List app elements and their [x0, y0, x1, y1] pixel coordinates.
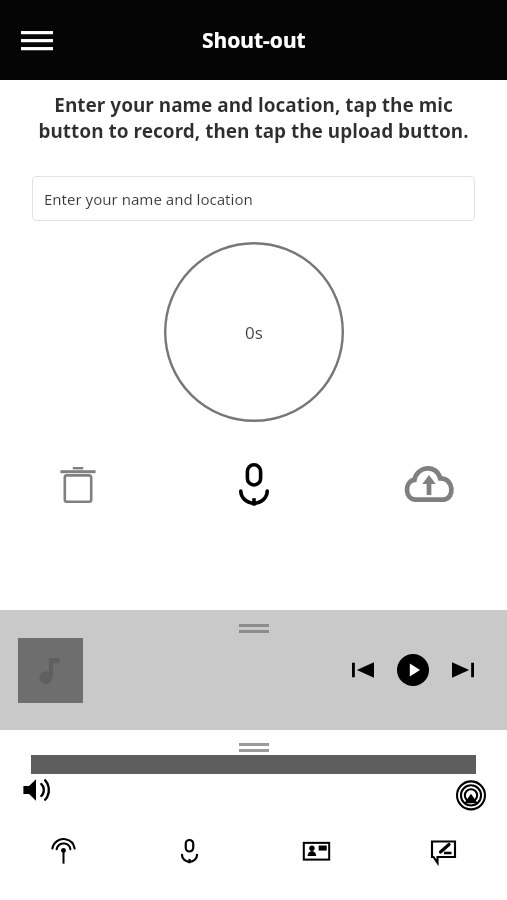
staticText: 0s — [245, 321, 263, 344]
button[interactable]: Record — [218, 449, 290, 521]
button[interactable]: Next track — [441, 648, 485, 692]
button[interactable]: Volume — [14, 768, 58, 812]
button[interactable]: Play — [391, 648, 435, 692]
button[interactable]: Upload — [393, 449, 465, 521]
button[interactable]: Contacts — [253, 822, 380, 880]
button[interactable]: Enter your name and location — [32, 176, 475, 221]
staticText: Shout-out — [202, 26, 306, 55]
button[interactable]: Menu — [12, 15, 62, 65]
button[interactable]: Microphone — [126, 822, 253, 880]
staticText: Enter your name and location, tap the mi… — [26, 92, 481, 144]
button[interactable]: 0s — [164, 242, 344, 422]
button[interactable]: Cast to device — [449, 770, 493, 814]
button[interactable]: Compose message — [380, 822, 507, 880]
button[interactable]: Broadcast — [0, 822, 126, 880]
button[interactable]: Previous track — [341, 648, 385, 692]
staticText: Enter your name and location — [44, 189, 253, 209]
button[interactable]: Album art — [18, 638, 83, 703]
button[interactable]: Delete recording — [42, 449, 114, 521]
